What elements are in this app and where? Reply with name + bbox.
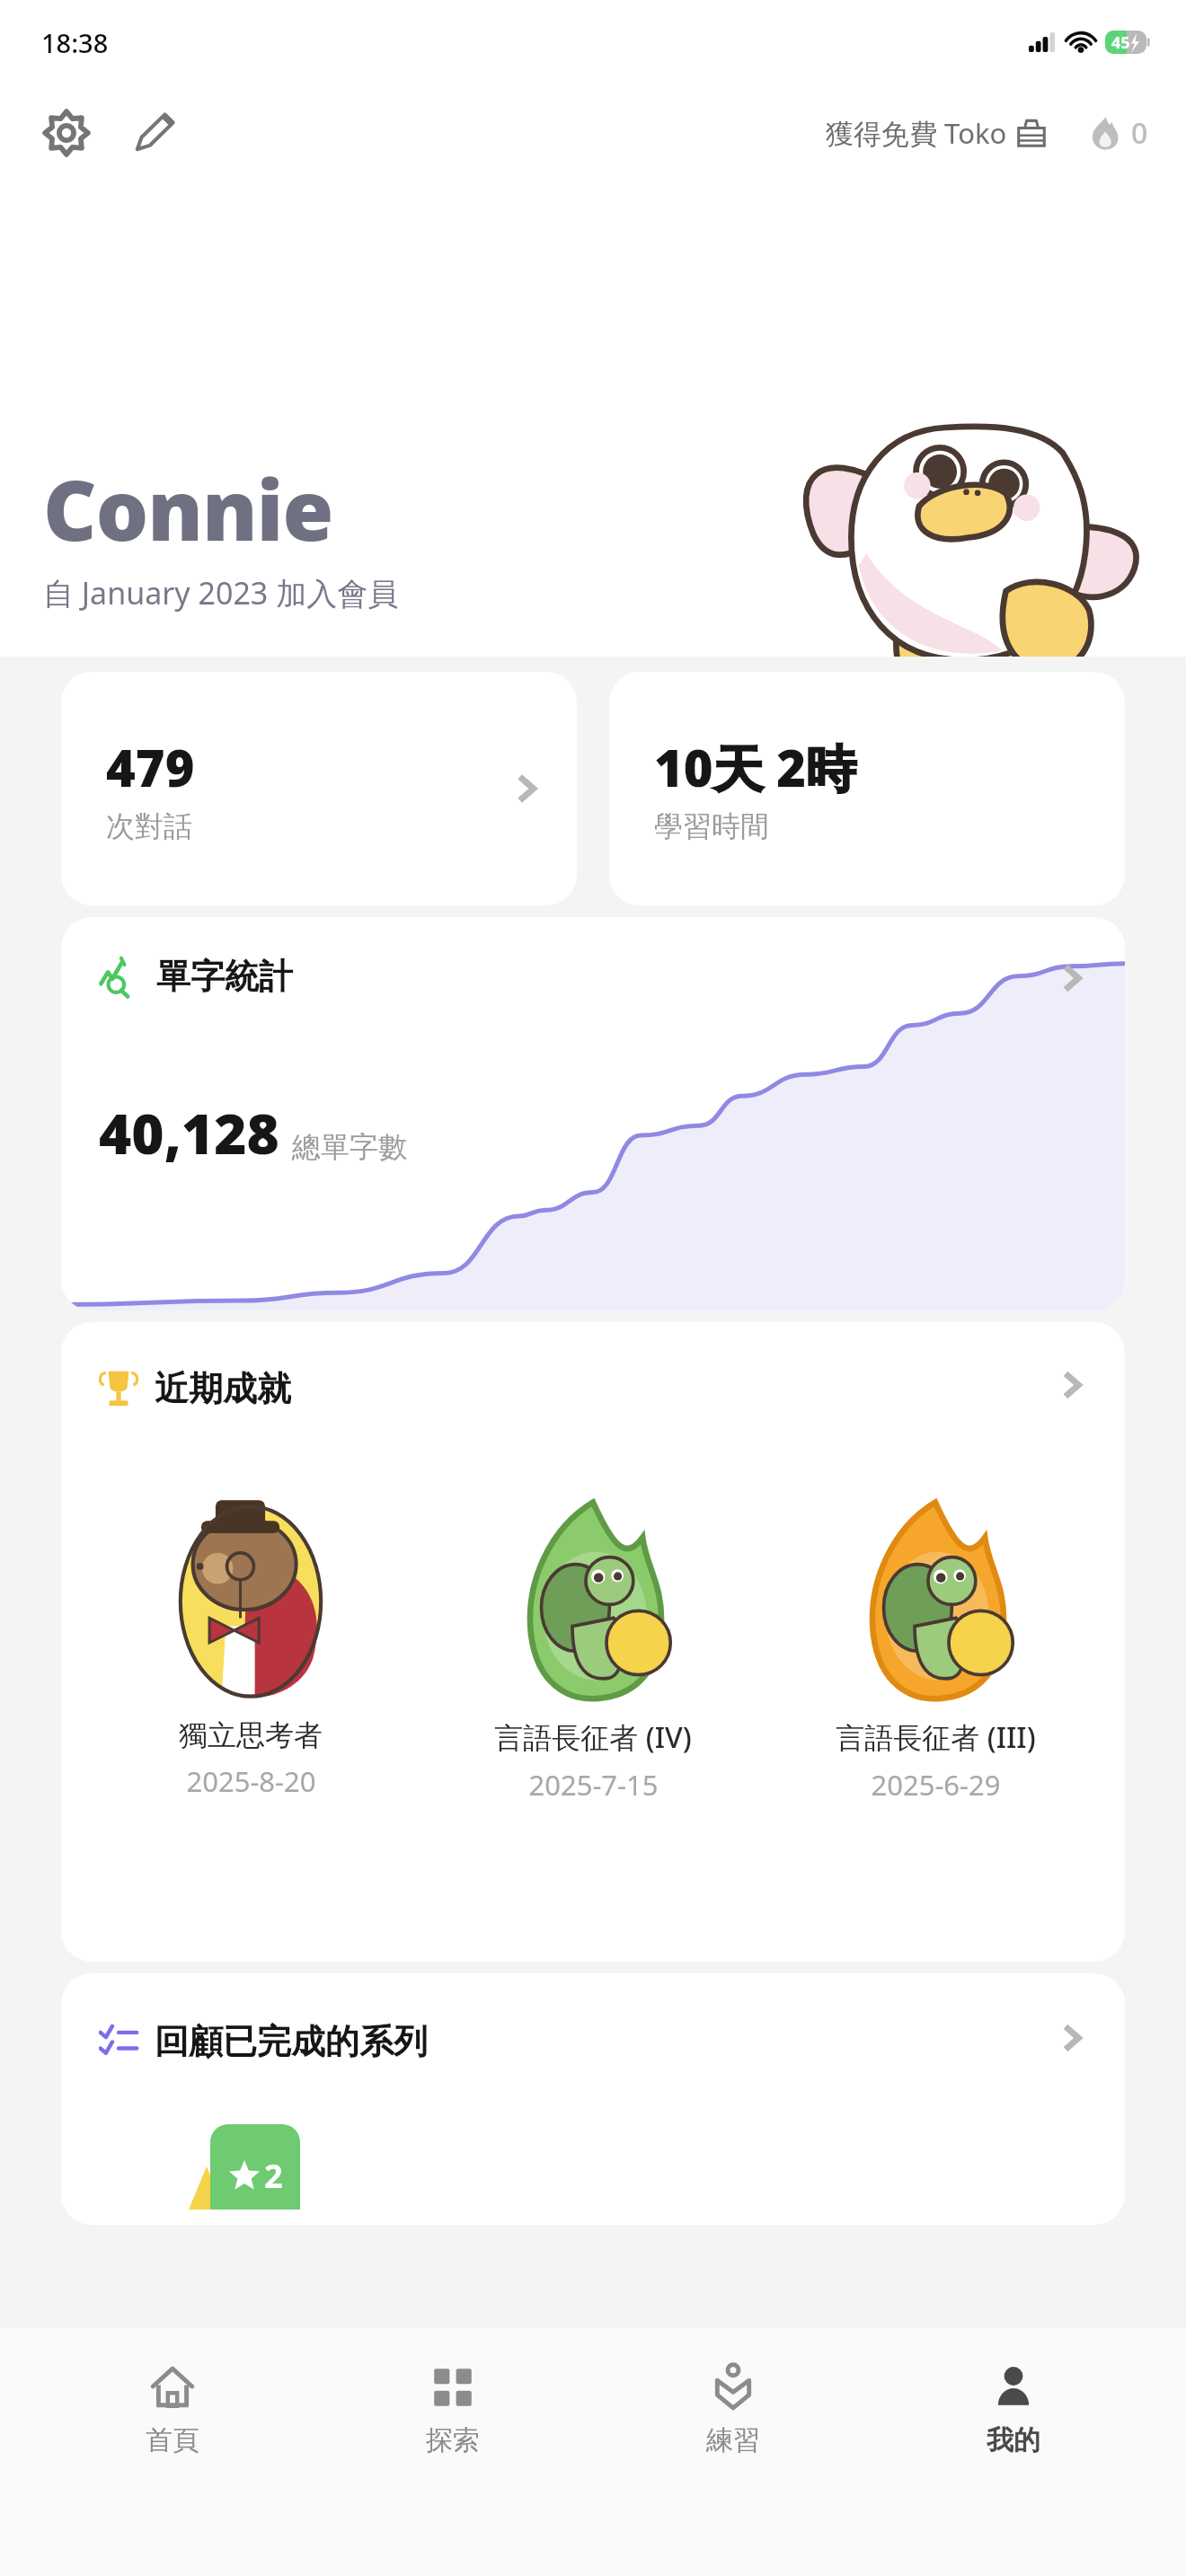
button[interactable]: 首頁 [65, 2359, 280, 2463]
button[interactable]: 單字統計 [61, 917, 1125, 1310]
button[interactable]: 獨立思考者 [98, 1498, 403, 1800]
staticText: 言語長征者 (III) [836, 1717, 1036, 1757]
staticText: 10天 2時 [654, 733, 857, 801]
staticText: 獨立思考者 [179, 1717, 323, 1753]
staticText: 自 January 2023 加入會員 [43, 572, 399, 613]
button[interactable]: 0 [1081, 106, 1155, 160]
staticText: 探索 [426, 2423, 480, 2457]
button[interactable]: 言語長征者 (IV) [440, 1498, 746, 1804]
staticText: 獲得免費 Toko [826, 114, 1007, 152]
staticText: 2025-8-20 [186, 1762, 316, 1800]
button[interactable]: View all achievements [1048, 1360, 1098, 1410]
staticText: 40,128 [99, 1095, 279, 1170]
button[interactable]: 練習 [625, 2359, 841, 2463]
staticText: 0 [1131, 113, 1148, 153]
staticText: 次對話 [106, 808, 192, 844]
button[interactable]: 479 [61, 672, 577, 905]
button[interactable]: 獲得免費 Toko [819, 107, 1054, 159]
staticText: 我的 [987, 2423, 1040, 2457]
button[interactable]: 我的 [906, 2359, 1121, 2463]
button[interactable]: 近期成就 [99, 1367, 291, 1410]
staticText: 單字統計 [156, 955, 293, 998]
staticText: 479 [106, 733, 195, 801]
staticText: 練習 [706, 2423, 760, 2457]
staticText: Connie [43, 453, 333, 565]
staticText: 45 [1111, 31, 1130, 54]
staticText: 2025-7-15 [528, 1766, 659, 1804]
staticText: 2 [264, 2154, 283, 2198]
button[interactable]: 探索 [345, 2359, 561, 2463]
button[interactable]: 10天 2時 [609, 672, 1125, 905]
button[interactable]: Settings [31, 97, 102, 169]
button[interactable]: 回顧已完成的系列 [99, 2020, 428, 2063]
button[interactable]: 言語長征者 (III) [783, 1498, 1088, 1804]
staticText: 言語長征者 (IV) [494, 1717, 692, 1757]
staticText: 2025-6-29 [871, 1766, 1001, 1804]
staticText: 學習時間 [654, 808, 769, 844]
staticText: 總單字數 [292, 1129, 407, 1165]
staticText: 回顧已完成的系列 [155, 2020, 428, 2063]
staticText: 首頁 [146, 2423, 199, 2457]
button[interactable]: Edit profile [119, 97, 190, 169]
button[interactable]: View completed series [1048, 2013, 1098, 2063]
staticText: 近期成就 [155, 1367, 291, 1410]
staticText: 18:38 [41, 25, 109, 60]
